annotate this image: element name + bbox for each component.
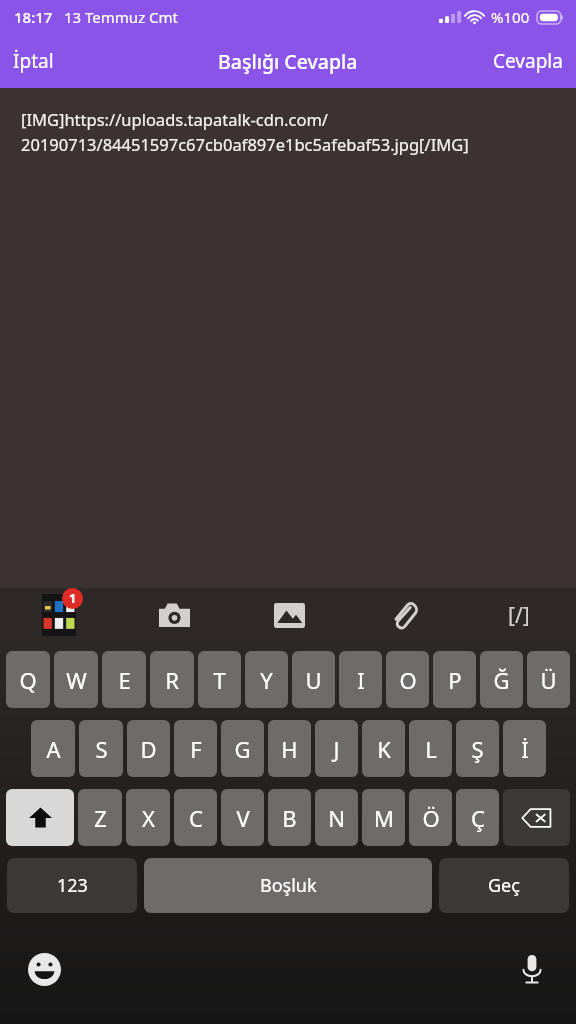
button[interactable]: G	[221, 720, 264, 777]
staticText: M	[374, 803, 394, 833]
staticText: X	[142, 803, 155, 833]
staticText: 18:17	[14, 7, 53, 27]
staticText: Q	[19, 665, 37, 695]
staticText: [/]	[508, 601, 530, 630]
button[interactable]: K	[362, 720, 405, 777]
staticText: V	[236, 803, 250, 833]
button[interactable]: P	[433, 651, 476, 708]
staticText: J	[333, 734, 340, 764]
button[interactable]: Backspace	[503, 789, 570, 846]
button[interactable]: E	[102, 651, 146, 708]
button[interactable]: C	[174, 789, 217, 846]
button[interactable]: R	[150, 651, 194, 708]
staticText: A	[46, 734, 61, 764]
button[interactable]: Ö	[409, 789, 452, 846]
button[interactable]: D	[127, 720, 170, 777]
button[interactable]: O	[386, 651, 429, 708]
button[interactable]: S	[79, 720, 123, 777]
button[interactable]: I	[339, 651, 382, 708]
button[interactable]: Y	[245, 651, 288, 708]
staticText: K	[377, 734, 391, 764]
button[interactable]: Cevapla	[480, 39, 576, 83]
button[interactable]: X	[126, 789, 170, 846]
button[interactable]: T	[198, 651, 241, 708]
staticText: H	[281, 734, 298, 764]
staticText: Y	[260, 665, 273, 695]
button[interactable]: B	[268, 789, 311, 846]
button[interactable]: Camera	[148, 589, 200, 641]
button[interactable]: J	[315, 720, 358, 777]
staticText: 123	[57, 873, 88, 898]
staticText: Ç	[471, 803, 485, 833]
staticText: Başlığı Cevapla	[218, 48, 358, 75]
button[interactable]: Geç	[439, 858, 569, 913]
button[interactable]: V	[221, 789, 264, 846]
button[interactable]: U	[292, 651, 335, 708]
button[interactable]: Photo library	[263, 589, 315, 641]
button[interactable]: Recent apps	[32, 589, 84, 641]
staticText: Z	[94, 803, 107, 833]
button[interactable]: Shift	[6, 789, 74, 846]
button[interactable]: Ğ	[480, 651, 523, 708]
staticText: O	[399, 665, 417, 695]
button[interactable]: 123	[7, 858, 137, 913]
staticText: F	[190, 734, 202, 764]
staticText: U	[305, 665, 322, 695]
staticText: N	[328, 803, 345, 833]
staticText: L	[425, 734, 437, 764]
button[interactable]: Insert code	[493, 589, 545, 641]
button[interactable]: Attach file	[378, 589, 430, 641]
button[interactable]: F	[174, 720, 217, 777]
staticText: %100	[491, 7, 530, 27]
staticText: D	[140, 734, 157, 764]
button[interactable]: Boşluk	[144, 858, 432, 913]
staticText: [IMG]https://uploads.tapatalk-cdn.com/ 2…	[21, 108, 469, 155]
button[interactable]: L	[409, 720, 452, 777]
staticText: G	[234, 734, 251, 764]
button[interactable]: Ç	[456, 789, 499, 846]
staticText: 1	[69, 590, 77, 607]
button[interactable]: Ü	[527, 651, 570, 708]
button[interactable]: H	[268, 720, 311, 777]
staticText: Ğ	[493, 665, 510, 695]
staticText: E	[118, 665, 131, 695]
button[interactable]: M	[362, 789, 405, 846]
staticText: I	[357, 665, 365, 695]
button[interactable]: N	[315, 789, 358, 846]
button[interactable]: Dictation	[508, 945, 556, 993]
staticText: S	[95, 734, 108, 764]
staticText: Geç	[488, 873, 520, 898]
staticText: Ö	[422, 803, 440, 833]
staticText: B	[282, 803, 297, 833]
staticText: P	[448, 665, 462, 695]
staticText: C	[189, 803, 203, 833]
staticText: İ	[521, 734, 529, 764]
button[interactable]: Q	[6, 651, 50, 708]
staticText: R	[165, 665, 179, 695]
button[interactable]: Z	[78, 789, 122, 846]
button[interactable]: Ş	[456, 720, 499, 777]
staticText: Boşluk	[260, 873, 317, 898]
button[interactable]: İ	[503, 720, 546, 777]
staticText: Cevapla	[493, 48, 563, 74]
button[interactable]: İptal	[0, 39, 67, 83]
staticText: 13 Temmuz Cmt	[64, 7, 179, 27]
staticText: W	[66, 665, 87, 695]
staticText: İptal	[13, 48, 54, 74]
button[interactable]: W	[54, 651, 98, 708]
button[interactable]: Emoji keyboard	[20, 945, 68, 993]
staticText: T	[213, 665, 226, 695]
button[interactable]: A	[31, 720, 75, 777]
staticText: Ü	[540, 665, 557, 695]
staticText: Ş	[471, 734, 484, 764]
